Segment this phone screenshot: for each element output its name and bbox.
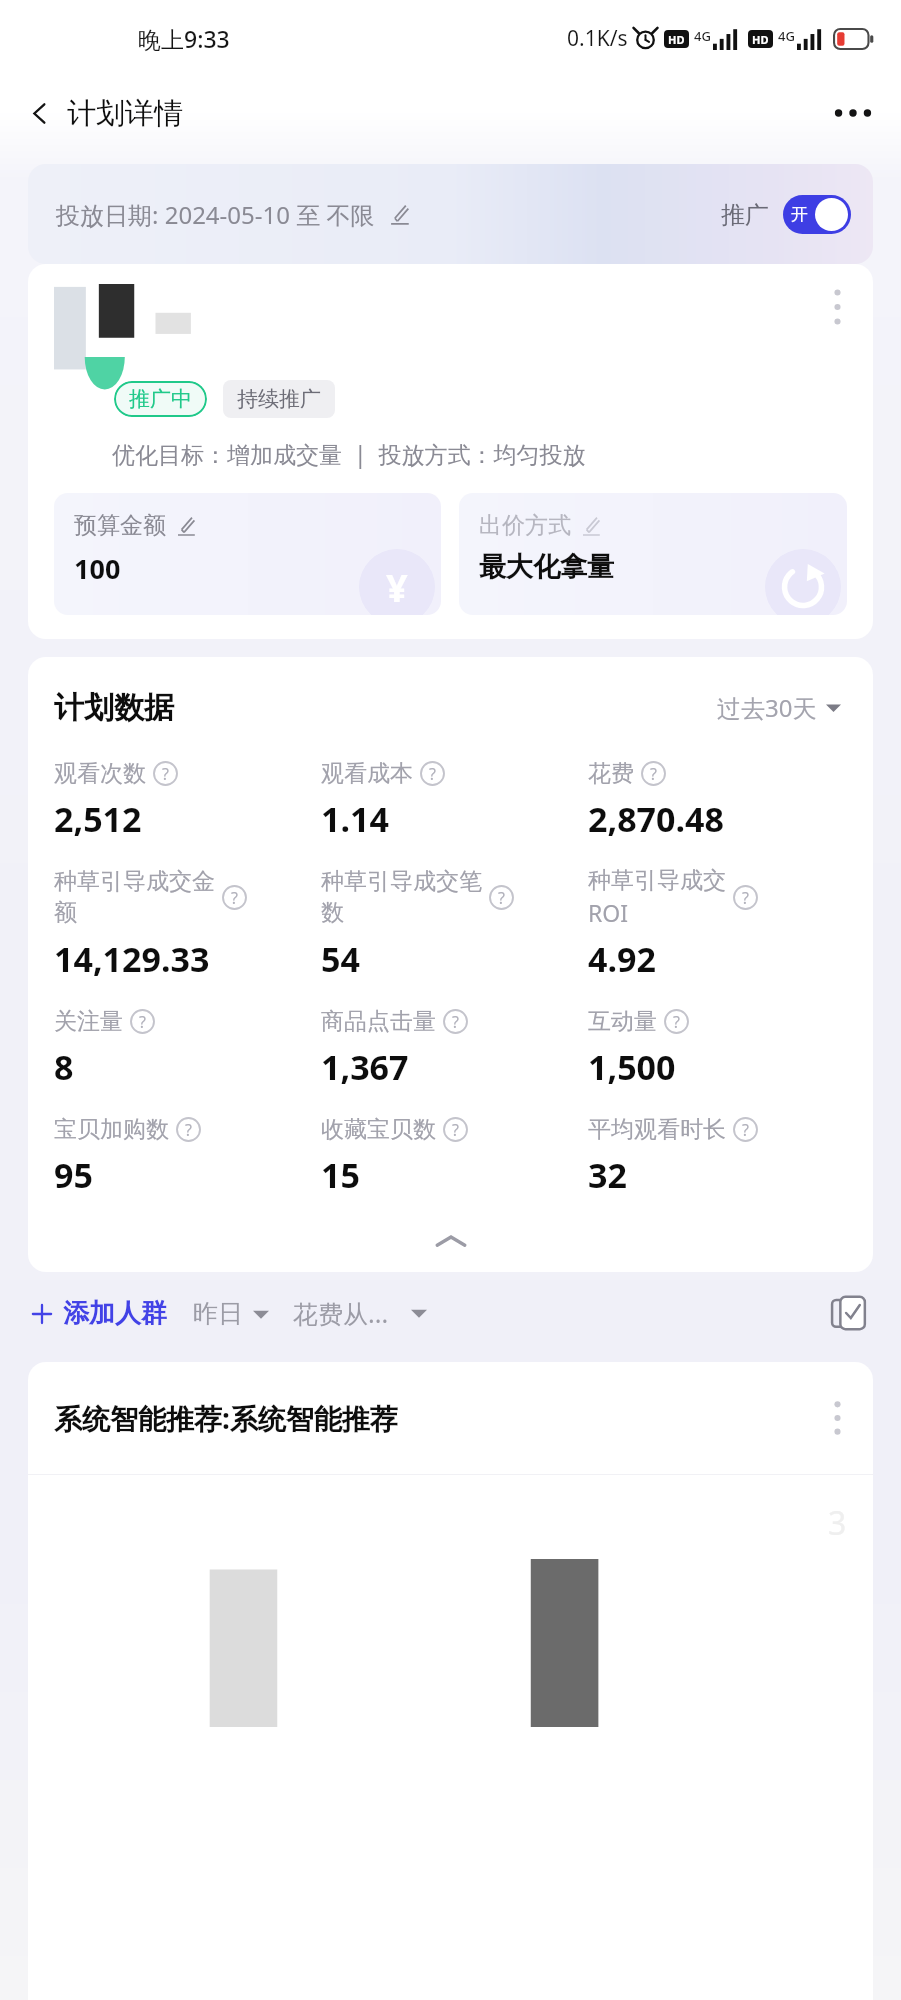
button[interactable]: 平均观看时长 (588, 1112, 847, 1198)
button[interactable]: 观看次数 (54, 756, 313, 842)
staticText: ? (429, 763, 436, 785)
button[interactable]: ¥ (54, 493, 441, 615)
staticText: 开 (791, 204, 808, 225)
staticText: HD (752, 32, 769, 47)
button[interactable]: More options (827, 87, 879, 139)
staticText: 花费从... (293, 1296, 389, 1330)
staticText: 观看成本 (321, 759, 413, 788)
staticText: 出价方式 (479, 511, 571, 540)
staticText: 宝贝加购数 (54, 1115, 169, 1144)
staticText: 推广中 (129, 386, 192, 412)
staticText: 54 (321, 936, 360, 982)
staticText: 100 (74, 550, 121, 587)
button[interactable]: 关注量 (54, 1004, 313, 1090)
button[interactable]: 收藏宝贝数 (321, 1112, 580, 1198)
staticText: 1.14 (321, 796, 389, 842)
button[interactable]: 推广中 (114, 381, 207, 417)
staticText: 4G (694, 27, 711, 45)
staticText: 商品点击量 (321, 1007, 436, 1036)
staticText: ¥ (386, 561, 408, 613)
staticText: 添加人群 (63, 1297, 167, 1330)
staticText: 15 (321, 1152, 360, 1198)
staticText: 系统智能推荐:系统智能推荐 (54, 1399, 398, 1437)
button[interactable]: 互动量 (588, 1004, 847, 1090)
button[interactable]: Back (16, 89, 193, 138)
staticText: 昨日 (193, 1298, 243, 1329)
button[interactable]: Group options (819, 1395, 855, 1441)
staticText: 计划数据 (54, 689, 174, 727)
staticText: 优化目标：增加成交量 | 投放方式：均匀投放 (112, 438, 586, 469)
staticText: 4G (778, 27, 795, 45)
staticText: ? (742, 1119, 749, 1141)
staticText: 晚上9:33 (138, 23, 230, 54)
staticText: 2,870.48 (588, 796, 724, 842)
staticText: ? (231, 887, 238, 909)
staticText: 种草引导成交笔 (321, 867, 482, 896)
staticText: ? (742, 887, 749, 909)
staticText: 最大化拿量 (479, 550, 614, 584)
staticText: 数 (321, 898, 344, 927)
button[interactable]: Collapse data (54, 1218, 847, 1264)
staticText: ? (673, 1011, 680, 1033)
button[interactable]: 种草引导成交金 (54, 864, 313, 982)
staticText: HD (668, 32, 685, 47)
staticText: 8 (54, 1044, 74, 1090)
staticText: ROI (588, 897, 629, 928)
staticText: 14,129.33 (54, 936, 210, 982)
staticText: ? (498, 887, 505, 909)
button[interactable]: 观看成本 (321, 756, 580, 842)
staticText: 1,500 (588, 1044, 676, 1090)
staticText: 95 (54, 1152, 93, 1198)
button[interactable]: 过去30天 (711, 685, 847, 730)
button[interactable]: Item options (819, 284, 855, 330)
staticText: 持续推广 (237, 386, 321, 412)
button[interactable]: 投放日期: 2024-05-10 至 不限 (28, 164, 873, 264)
staticText: 计划详情 (67, 95, 183, 132)
staticText: 平均观看时长 (588, 1115, 726, 1144)
button[interactable]: 昨日 (189, 1292, 273, 1335)
button[interactable]: Promotion enabled (783, 195, 851, 234)
staticText: 1,367 (321, 1044, 409, 1090)
staticText: 0.1K/s (567, 24, 628, 53)
staticText: 过去30天 (717, 691, 817, 724)
staticText: 种草引导成交 (588, 866, 726, 895)
button[interactable]: 宝贝加购数 (54, 1112, 313, 1198)
button[interactable]: 种草引导成交笔 (321, 864, 580, 982)
staticText: ? (650, 763, 657, 785)
staticText: 额 (54, 898, 77, 927)
staticText: 预算金额 (74, 511, 166, 540)
button[interactable]: 花费从... (289, 1290, 431, 1336)
staticText: 收藏宝贝数 (321, 1115, 436, 1144)
other: Back (26, 100, 53, 127)
staticText: 互动量 (588, 1007, 657, 1036)
staticText: 关注量 (54, 1007, 123, 1036)
staticText: ? (162, 763, 169, 785)
button[interactable]: 种草引导成交 (588, 864, 847, 982)
staticText: 4.92 (588, 936, 656, 982)
button[interactable]: 出价方式 (459, 493, 847, 615)
staticText: 观看次数 (54, 759, 146, 788)
button[interactable]: Select columns (823, 1287, 875, 1339)
staticText: 3 (828, 1501, 847, 1545)
staticText: ? (452, 1119, 459, 1141)
staticText: ? (139, 1011, 146, 1033)
staticText: 32 (588, 1152, 627, 1198)
staticText: 投放日期: 2024-05-10 至 不限 (56, 198, 375, 231)
button[interactable]: 花费 (588, 756, 847, 842)
staticText: 种草引导成交金 (54, 867, 215, 896)
staticText: 花费 (588, 759, 634, 788)
button[interactable]: 商品点击量 (321, 1004, 580, 1090)
button[interactable]: 添加人群 (26, 1291, 171, 1336)
button[interactable]: Item options (28, 264, 873, 639)
staticText: 推广 (721, 200, 769, 230)
button[interactable]: 持续推广 (223, 380, 335, 418)
button[interactable]: 系统智能推荐:系统智能推荐 (28, 1362, 873, 1474)
staticText: ? (185, 1119, 192, 1141)
staticText: ? (452, 1011, 459, 1033)
staticText: 2,512 (54, 796, 142, 842)
